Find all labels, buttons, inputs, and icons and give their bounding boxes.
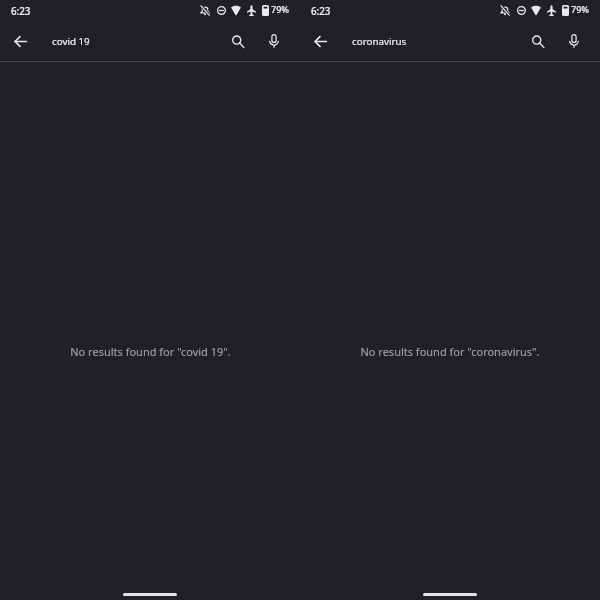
staticText: No results found for "coronavirus". <box>360 344 540 359</box>
button[interactable]: Voice search <box>559 27 588 56</box>
staticText: 79% <box>571 3 589 15</box>
button[interactable]: Back <box>6 27 35 56</box>
button[interactable]: Back <box>306 27 335 56</box>
button[interactable]: Search <box>224 27 253 56</box>
button[interactable]: Voice search <box>259 27 288 56</box>
staticText: coronavirus <box>352 35 407 48</box>
staticText: 79% <box>271 3 289 15</box>
staticText: 6:23 <box>311 5 331 18</box>
staticText: 6:23 <box>11 5 31 18</box>
staticText: No results found for "covid 19". <box>70 344 231 359</box>
button[interactable]: Search <box>524 27 553 56</box>
staticText: covid 19 <box>52 35 90 48</box>
